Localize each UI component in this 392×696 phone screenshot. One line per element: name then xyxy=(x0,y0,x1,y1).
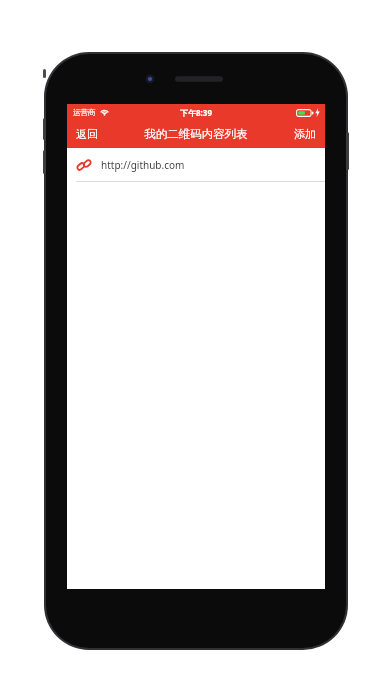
staticText: 返回 xyxy=(76,127,98,141)
staticText: 我的二维码内容列表 xyxy=(144,127,248,141)
button[interactable]: 返回 xyxy=(67,120,107,148)
staticText: 下午8:39 xyxy=(180,107,212,118)
staticText: 添加 xyxy=(294,127,316,141)
staticText: http://github.com xyxy=(101,158,185,172)
button[interactable]: Link xyxy=(67,148,325,182)
staticText: 运营商 xyxy=(73,108,96,117)
button[interactable]: 添加 xyxy=(285,120,325,148)
other: Link xyxy=(76,157,92,173)
